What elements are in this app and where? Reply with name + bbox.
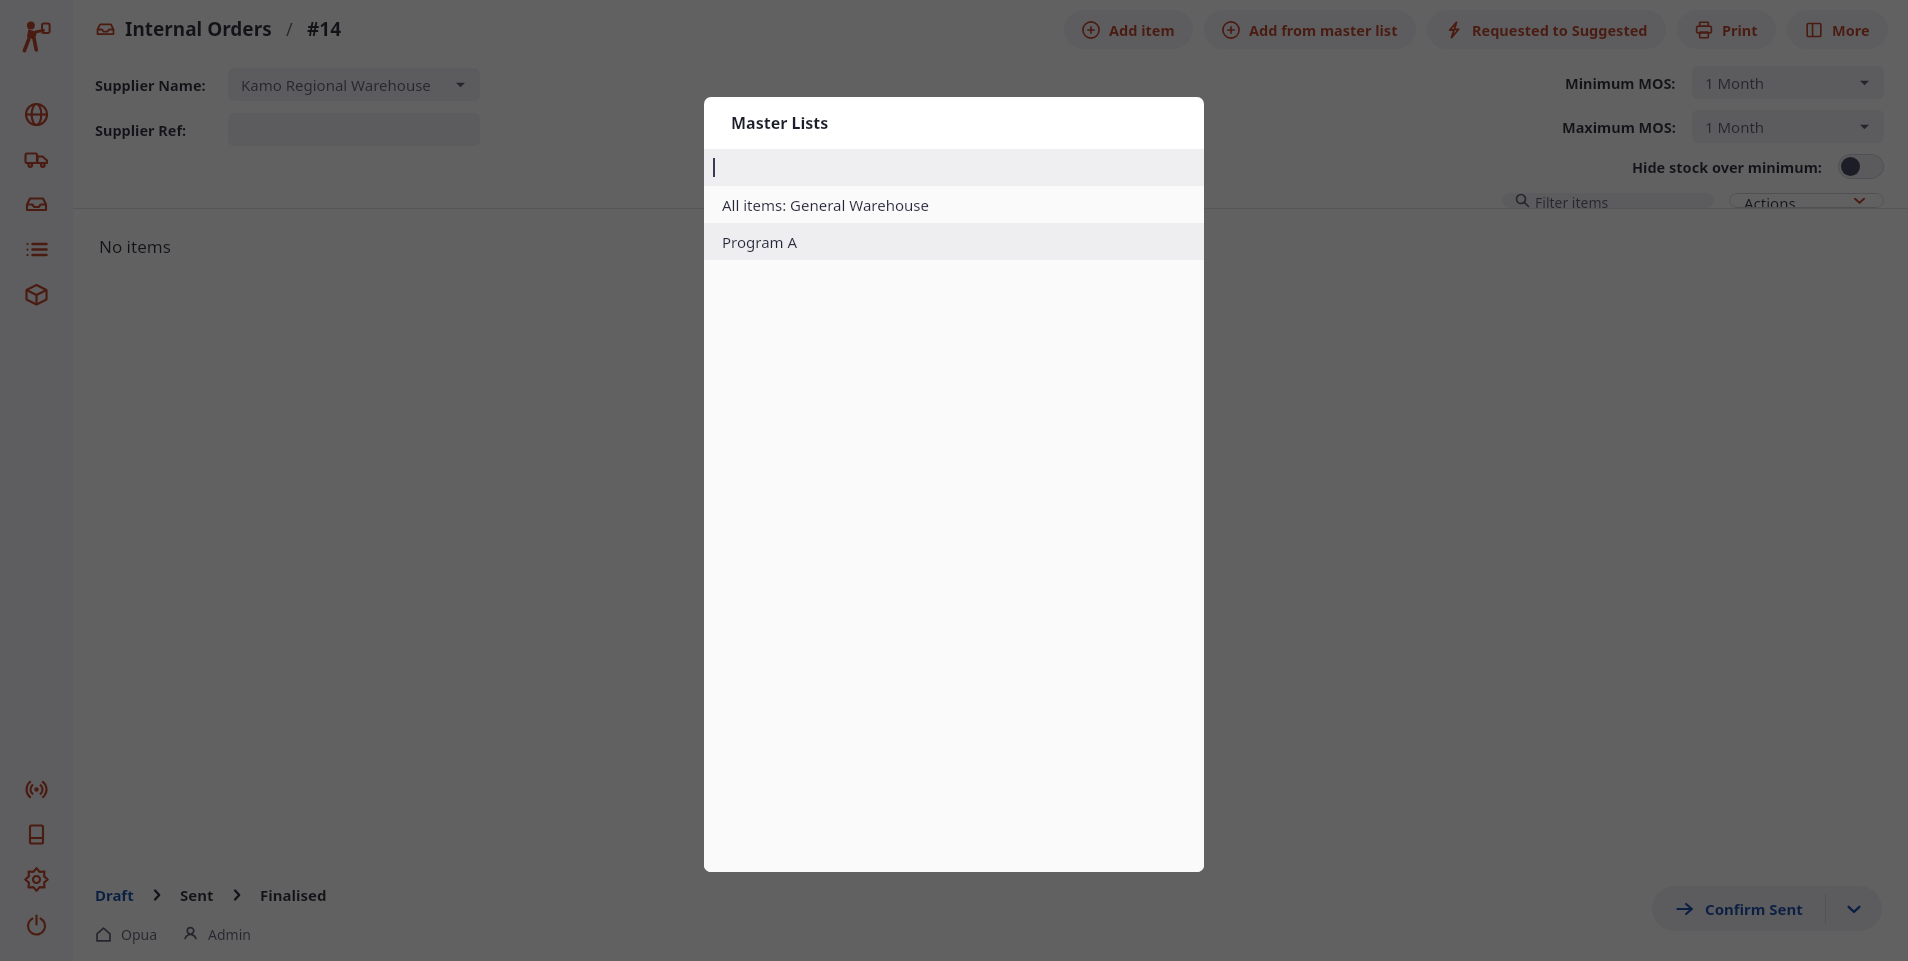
button[interactable]: Internal orders [0,182,73,227]
staticText: Confirm Sent [1705,899,1803,919]
staticText: Maximum MOS: [1562,117,1676,137]
button[interactable]: Hide stock over minimum: [1632,154,1884,179]
button[interactable]: Settings [0,857,73,902]
button[interactable]: Dashboard [0,92,73,137]
staticText: Draft [95,885,134,905]
staticText: Supplier Ref: [95,120,187,140]
staticText: Master Lists [731,112,829,134]
button[interactable]: More [1787,10,1888,49]
staticText: Actions [1744,193,1796,208]
staticText: / [272,17,307,42]
button[interactable]: Filter items [1502,193,1714,208]
button[interactable]: Kamo Regional Warehouse [228,68,480,101]
button[interactable]: Deliveries [0,137,73,182]
staticText: Hide stock over minimum: [1632,157,1822,177]
button[interactable]: Log out [0,902,73,947]
button[interactable]: Add from master list [1204,10,1416,49]
staticText: Add from master list [1249,20,1398,40]
staticText: Filter items [1535,193,1609,208]
staticText: Finalised [260,885,327,905]
staticText: 1 Month [1705,73,1765,93]
button[interactable]: Requested to Suggested [1427,10,1666,49]
staticText: Admin [208,925,251,944]
button[interactable]: All items: General Warehouse [704,186,1204,223]
button[interactable]: Program A [704,223,1204,260]
button[interactable]: Stock [0,272,73,317]
staticText: All items: General Warehouse [722,195,929,215]
button[interactable]: Actions [1729,193,1884,208]
button[interactable] [704,149,1204,186]
button[interactable] [0,0,1908,961]
staticText: #14 [307,16,342,42]
button[interactable]: Print [1677,10,1776,49]
button[interactable]: Finalised [260,885,327,905]
staticText: Opua [121,925,158,944]
button[interactable]: Sent [180,885,214,905]
button[interactable]: Add item [1064,10,1193,49]
button[interactable]: More send options [1826,886,1882,931]
staticText: No items [99,235,171,258]
button[interactable]: 1 Month [1692,110,1884,143]
staticText: 1 Month [1705,117,1765,137]
button[interactable]: 1 Month [1692,66,1884,99]
staticText: Add item [1109,20,1175,40]
staticText: Program A [722,232,798,252]
staticText: Internal Orders [125,16,272,42]
staticText: Kamo Regional Warehouse [241,75,431,95]
staticText: Minimum MOS: [1565,73,1676,93]
button[interactable]: Sync [0,767,73,812]
staticText: Requested to Suggested [1472,20,1648,40]
staticText: Print [1722,20,1758,40]
button[interactable]: Home logo [11,12,63,64]
button[interactable]: Draft [95,885,134,905]
button[interactable]: Master lists [0,227,73,272]
button[interactable]: Confirm Sent [1652,886,1825,931]
staticText: Supplier Name: [95,75,206,95]
staticText: Sent [180,885,214,905]
staticText: More [1832,20,1870,40]
button[interactable]: Reports [0,812,73,857]
